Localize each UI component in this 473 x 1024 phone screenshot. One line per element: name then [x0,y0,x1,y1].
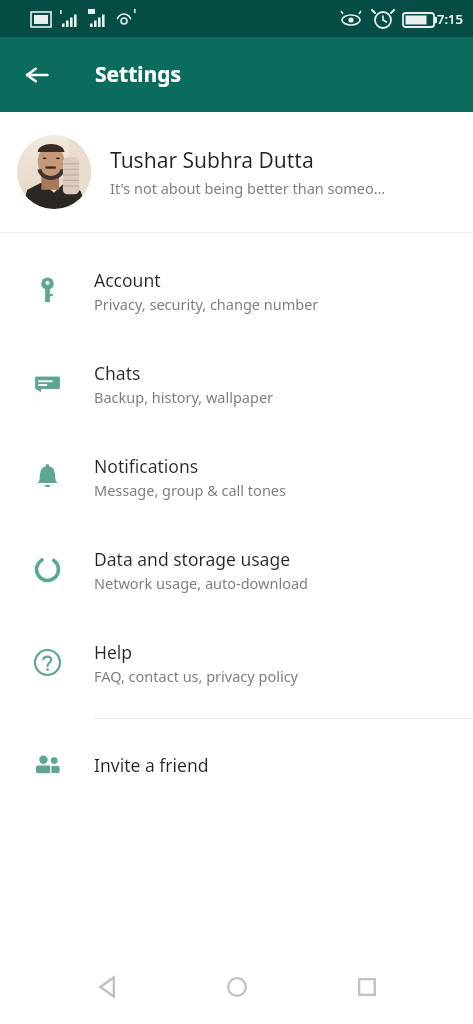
staticText: It's not about being better than someo… [110,178,386,198]
button[interactable]: Tushar Subhra Dutta [0,112,473,232]
button[interactable]: Account [0,244,473,337]
staticText: Notifications [94,454,199,478]
button[interactable]: Back [12,50,62,100]
staticText: Message, group & call tones [94,480,286,500]
staticText: Chats [94,361,141,385]
staticText: Data and storage usage [94,547,291,571]
button[interactable]: Data and storage usage [0,523,473,616]
staticText: Settings [95,60,182,89]
button[interactable]: Home [213,963,261,1011]
staticText: Help [94,640,133,664]
staticText: Network usage, auto-download [94,573,308,593]
staticText: 7:15 [437,10,463,28]
staticText: Privacy, security, change number [94,294,319,314]
button[interactable]: Notifications [0,430,473,523]
staticText: Tushar Subhra Dutta [110,146,314,175]
staticText: Backup, history, wallpaper [94,387,274,407]
button[interactable]: Recents [343,963,391,1011]
staticText: FAQ, contact us, privacy policy [94,666,298,686]
staticText: Invite a friend [94,753,209,777]
button[interactable]: Back [83,963,131,1011]
button[interactable]: Invite a friend [0,728,473,802]
button[interactable]: Chats [0,337,473,430]
button[interactable]: Help [0,616,473,709]
staticText: Account [94,268,161,292]
